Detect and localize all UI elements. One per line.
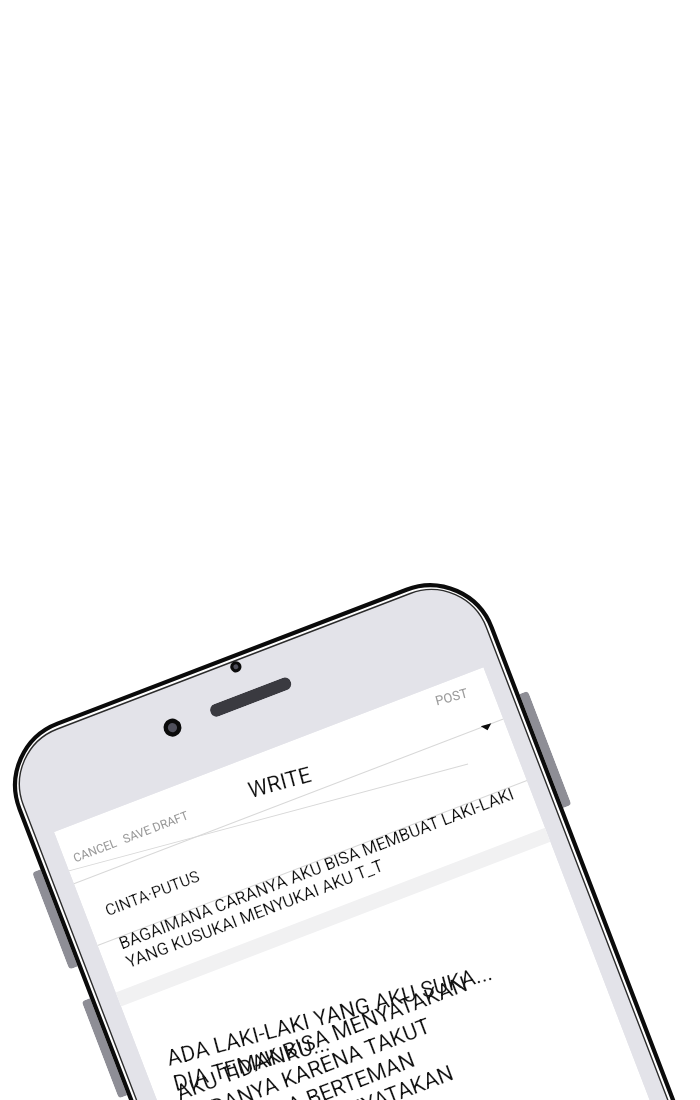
staticText: TIDAK BISA BERTEMAN [191,1047,419,1100]
staticText: CINTA·PUTUS [102,866,203,920]
button[interactable]: Expand [477,718,496,736]
staticText: ADA LAKI-LAKI YANG AKU SUKA... [161,927,498,1100]
staticText: KALAU AKU MENYATAKAN [200,1060,457,1100]
staticText: BAGAIMANA CARANYA AKU BISA MEMBUAT LAKI-… [116,783,517,953]
staticText: SAVE DRAFT [121,808,190,846]
button[interactable]: CANCEL [54,667,700,1100]
button[interactable]: CINTA·PUTUS [102,866,203,920]
button[interactable]: WRITE [243,755,317,810]
staticText: WRITE [243,755,317,810]
button[interactable]: AKU TIDAK BISA MENYATAKAN [172,971,508,1100]
button[interactable]: POST [432,682,471,712]
button[interactable]: CANCEL [71,808,190,865]
staticText: AKU TIDAK BISA MENYATAKAN [172,971,471,1100]
staticText: DIA TEMANKU... [168,1014,335,1100]
staticText: PADANYA KARENA TAKUT [182,1013,435,1100]
staticText: CANCEL [71,836,119,865]
staticText: YANG KUSUKAI MENYUKAI AKU T_T [123,855,386,972]
button[interactable]: ADA LAKI-LAKI YANG AKU SUKA... [159,927,507,1100]
staticText: POST [432,682,471,712]
button[interactable]: BAGAIMANA CARANYA AKU BISA MEMBUAT LAKI-… [116,783,524,972]
